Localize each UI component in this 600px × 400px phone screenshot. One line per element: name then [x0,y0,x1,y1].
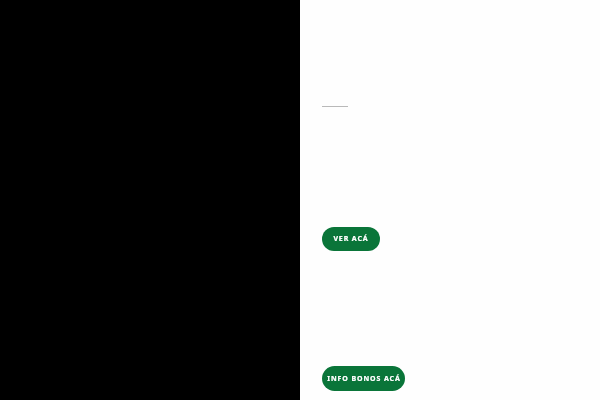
button[interactable]: INFO BONOS ACÁ [322,366,405,391]
staticText: VER ACÁ [333,234,369,244]
button[interactable]: VER ACÁ [322,227,380,251]
staticText: INFO BONOS ACÁ [327,374,401,384]
